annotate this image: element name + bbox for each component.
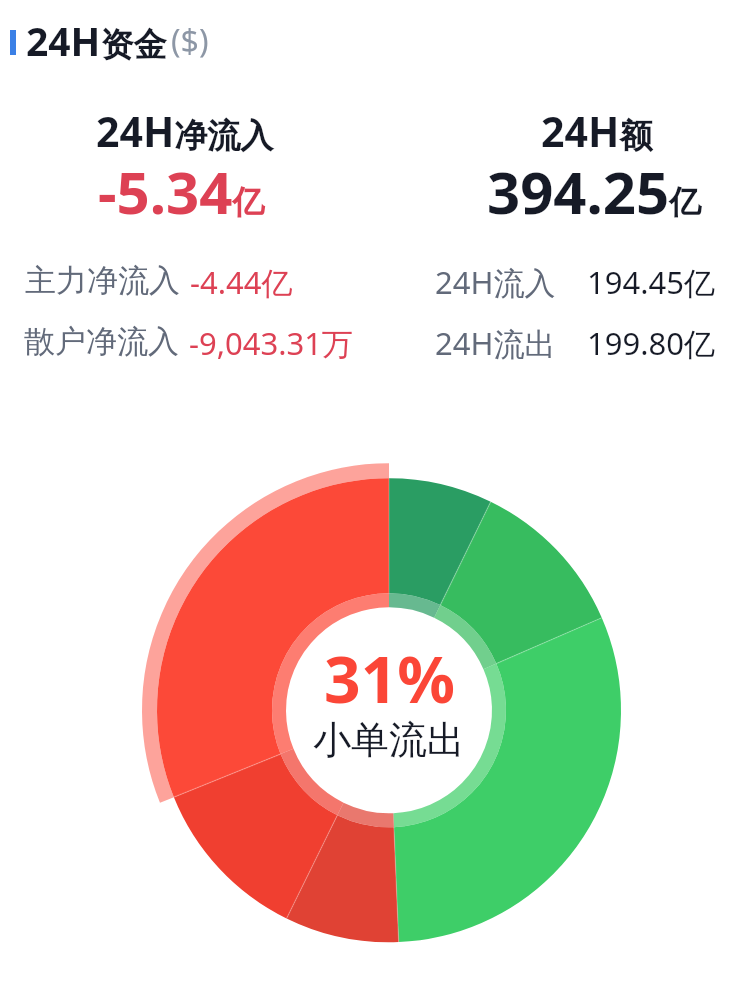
button[interactable]: 24H流出 — [435, 322, 556, 364]
staticText: 小单流出 — [313, 716, 465, 764]
button[interactable]: 194.45亿 — [587, 261, 715, 303]
button[interactable]: 散户净流入 — [24, 322, 179, 361]
button[interactable]: -4.44亿 — [190, 261, 293, 303]
staticText: ($) — [171, 19, 209, 63]
staticText: 主力净流入 — [25, 261, 180, 300]
staticText: 24H流入 — [435, 261, 556, 303]
button[interactable]: 24H流入 — [435, 261, 556, 303]
button[interactable]: 31% — [286, 607, 492, 813]
staticText: 24H流出 — [435, 322, 556, 364]
other: 24小时资金流向占比环形图 — [0, 0, 750, 1003]
staticText: 394.25亿 — [487, 152, 702, 231]
staticText: -4.44亿 — [190, 261, 293, 303]
staticText: 24H净流入 — [96, 103, 274, 159]
staticText: 散户净流入 — [24, 322, 179, 361]
staticText: -9,043.31万 — [189, 322, 353, 364]
button[interactable]: 199.80亿 — [587, 322, 715, 364]
button[interactable]: 主力净流入 — [25, 261, 180, 300]
staticText: 24H额 — [541, 103, 653, 159]
button[interactable]: -9,043.31万 — [189, 322, 353, 364]
staticText: 199.80亿 — [587, 322, 715, 364]
staticText: 24H资金 — [26, 14, 167, 67]
staticText: 194.45亿 — [587, 261, 715, 303]
staticText: -5.34亿 — [98, 152, 265, 231]
staticText: 31% — [324, 635, 455, 722]
button[interactable]: 24H资金 — [4, 8, 217, 73]
